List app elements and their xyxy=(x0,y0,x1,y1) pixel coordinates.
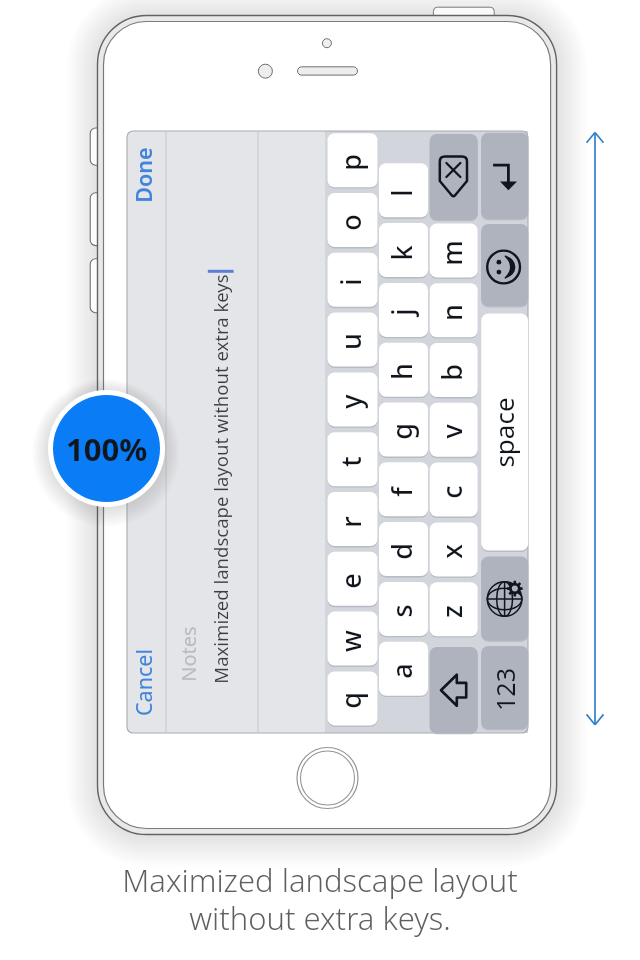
staticText: p xyxy=(332,154,369,171)
button[interactable]: delete xyxy=(430,134,478,220)
button[interactable]: d xyxy=(379,522,428,576)
button[interactable]: emoji xyxy=(481,224,528,306)
staticText: m xyxy=(433,240,470,266)
button[interactable]: e xyxy=(328,552,378,606)
button[interactable]: m xyxy=(430,223,478,277)
staticText: Cancel xyxy=(129,649,158,716)
staticText: b xyxy=(433,364,470,381)
staticText: Maximized landscape layout without extra… xyxy=(122,859,518,939)
staticText: 123 xyxy=(488,668,522,711)
button[interactable]: w xyxy=(328,612,378,666)
button[interactable]: x xyxy=(430,522,478,576)
staticText: Done xyxy=(129,147,158,203)
staticText: y xyxy=(332,394,369,409)
button[interactable]: z xyxy=(430,582,478,636)
staticText: v xyxy=(433,424,470,439)
staticText: c xyxy=(433,485,470,499)
button[interactable]: u xyxy=(328,313,378,367)
button[interactable]: o xyxy=(328,193,378,247)
button[interactable]: k xyxy=(379,223,428,277)
button[interactable]: Note text field xyxy=(167,132,324,732)
staticText: r xyxy=(332,516,369,528)
button[interactable]: r xyxy=(328,492,378,546)
button[interactable]: numbers xyxy=(481,646,528,729)
button[interactable]: l xyxy=(379,163,428,217)
staticText: a xyxy=(383,663,420,679)
button[interactable]: Done xyxy=(128,132,166,230)
staticText: Maximized landscape layout without extra… xyxy=(208,274,233,684)
staticText: d xyxy=(383,543,420,560)
staticText: l xyxy=(383,189,420,197)
button[interactable]: b xyxy=(430,343,478,397)
button[interactable]: return xyxy=(481,133,528,219)
button[interactable]: space xyxy=(481,314,528,551)
staticText: k xyxy=(383,245,420,261)
staticText: f xyxy=(383,487,420,497)
button[interactable]: s xyxy=(379,582,428,636)
button[interactable]: 100% xyxy=(48,390,165,507)
button[interactable]: y xyxy=(328,372,378,426)
button[interactable]: keyboard settings xyxy=(481,556,528,640)
button[interactable]: f xyxy=(379,462,428,516)
button[interactable]: p xyxy=(328,133,378,187)
button[interactable]: shift xyxy=(430,647,478,733)
staticText: 100% xyxy=(66,428,148,470)
button[interactable]: t xyxy=(328,432,378,486)
button[interactable]: v xyxy=(430,403,478,457)
staticText: h xyxy=(383,363,420,380)
staticText: Notes xyxy=(175,626,202,682)
staticText: w xyxy=(332,630,369,652)
button[interactable]: h xyxy=(379,343,428,397)
button[interactable]: Cancel xyxy=(128,640,166,732)
staticText: space xyxy=(486,397,521,468)
button[interactable]: j xyxy=(379,283,428,337)
staticText: t xyxy=(332,456,369,467)
staticText: s xyxy=(383,604,420,618)
staticText: n xyxy=(433,304,470,321)
staticText: j xyxy=(383,308,420,316)
staticText: e xyxy=(332,573,369,589)
button[interactable]: i xyxy=(328,253,378,307)
staticText: i xyxy=(332,278,369,286)
staticText: u xyxy=(332,333,369,350)
staticText: z xyxy=(433,605,470,618)
staticText: q xyxy=(332,692,369,709)
staticText: o xyxy=(332,214,369,231)
button[interactable]: n xyxy=(430,283,478,337)
button[interactable]: q xyxy=(328,671,378,725)
staticText: g xyxy=(383,423,420,440)
staticText: x xyxy=(433,544,470,559)
button[interactable]: c xyxy=(430,463,478,517)
button[interactable]: g xyxy=(379,403,428,457)
button[interactable]: a xyxy=(379,642,428,696)
